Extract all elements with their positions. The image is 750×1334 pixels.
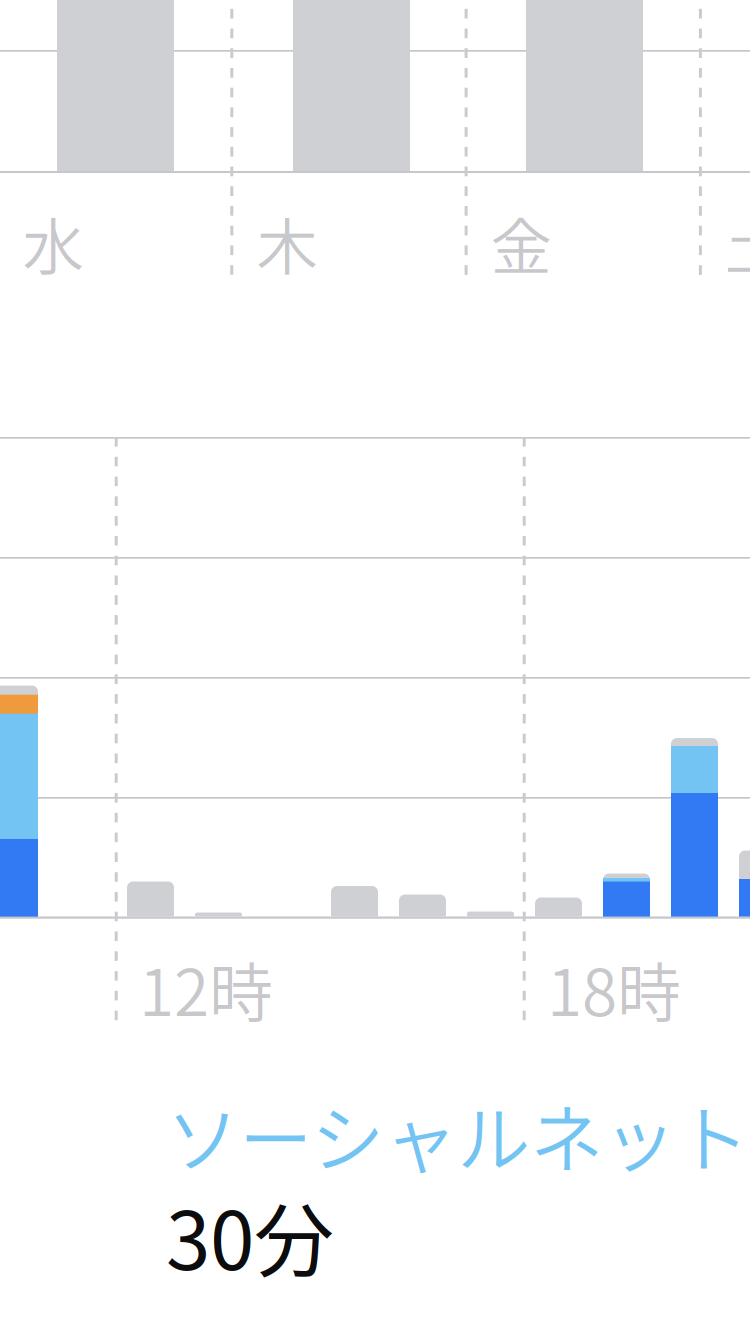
staticText: 土	[724, 199, 750, 287]
staticText: 18時	[547, 942, 681, 1034]
staticText: 木	[256, 199, 317, 287]
staticText: 金	[490, 199, 551, 287]
staticText: 水	[22, 199, 83, 287]
staticText: 30分	[166, 1177, 334, 1293]
staticText: 12時	[139, 942, 273, 1034]
staticText: ソーシャルネットワーク	[166, 1081, 750, 1188]
button[interactable]: ソーシャルネットワーク	[0, 0, 750, 201]
